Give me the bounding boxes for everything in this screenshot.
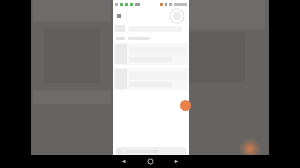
button[interactable] bbox=[115, 147, 187, 156]
button[interactable]: Compose bbox=[180, 100, 191, 111]
button[interactable] bbox=[114, 43, 188, 65]
button[interactable] bbox=[113, 23, 189, 34]
button[interactable]: Back bbox=[118, 156, 129, 167]
button[interactable]: Home bbox=[145, 156, 156, 167]
button[interactable] bbox=[114, 68, 188, 90]
button[interactable]: Recent apps bbox=[171, 156, 182, 167]
button[interactable]: Menu bbox=[115, 12, 123, 20]
